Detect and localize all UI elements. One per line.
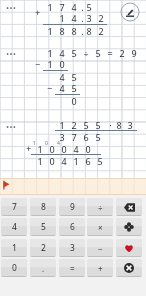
- staticText: 4: [59, 82, 65, 94]
- staticText: ×: [98, 222, 103, 233]
- staticText: ÷: [83, 47, 89, 59]
- staticText: 1: [59, 119, 65, 131]
- staticText: 6: [70, 221, 75, 233]
- staticText: 5: [71, 82, 77, 94]
- staticText: −: [98, 243, 103, 254]
- staticText: 6: [85, 155, 91, 167]
- staticText: 4: [12, 221, 17, 233]
- button[interactable]: Favorite: [116, 239, 142, 257]
- button[interactable]: Problem options: [4, 49, 18, 59]
- button[interactable]: 2: [30, 239, 56, 257]
- button[interactable]: ÷: [87, 198, 113, 216]
- button[interactable]: 9: [59, 198, 85, 216]
- staticText: 0: [61, 143, 67, 155]
- staticText: .: [42, 263, 45, 274]
- staticText: 2: [98, 12, 104, 24]
- button[interactable]: =: [59, 259, 85, 277]
- staticText: +: [98, 263, 103, 274]
- button[interactable]: 4: [1, 218, 27, 236]
- staticText: 4: [59, 71, 65, 83]
- staticText: 3: [86, 12, 92, 24]
- button[interactable]: ×: [87, 218, 113, 236]
- staticText: 1: [37, 143, 43, 155]
- staticText: 1: [33, 140, 36, 147]
- staticText: 3: [70, 242, 75, 254]
- button[interactable]: 1: [1, 239, 27, 257]
- staticText: 9: [131, 47, 137, 59]
- staticText: 0: [71, 95, 77, 107]
- staticText: 0: [12, 262, 17, 274]
- staticText: 5: [97, 155, 103, 167]
- staticText: 7: [71, 131, 77, 143]
- staticText: ·: [109, 119, 112, 131]
- staticText: 0: [49, 143, 55, 155]
- staticText: 8: [41, 201, 46, 213]
- staticText: 2: [119, 47, 125, 59]
- staticText: 5: [95, 119, 101, 131]
- staticText: 8: [116, 119, 122, 131]
- button[interactable]: +: [87, 259, 113, 277]
- staticText: +: [26, 142, 32, 154]
- button[interactable]: 5: [30, 218, 56, 236]
- staticText: 1: [12, 242, 17, 254]
- staticText: 5: [71, 71, 77, 83]
- button[interactable]: Backspace: [116, 198, 142, 216]
- staticText: 2: [98, 25, 104, 37]
- button[interactable]: 6: [59, 218, 85, 236]
- staticText: 1: [47, 25, 53, 37]
- staticText: 1: [47, 1, 53, 13]
- staticText: 1: [37, 155, 43, 167]
- staticText: 0: [45, 140, 48, 147]
- staticText: 1: [73, 155, 79, 167]
- staticText: 5: [86, 1, 92, 13]
- staticText: 5: [83, 119, 89, 131]
- button[interactable]: Clear: [116, 259, 142, 277]
- staticText: 5: [95, 131, 101, 143]
- button[interactable]: −: [87, 239, 113, 257]
- staticText: 5: [41, 221, 46, 233]
- button[interactable]: 0: [1, 259, 27, 277]
- staticText: 9: [70, 201, 75, 213]
- staticText: 8: [86, 25, 92, 37]
- staticText: ÷: [98, 202, 103, 213]
- staticText: −: [35, 58, 41, 70]
- staticText: 5: [95, 47, 101, 59]
- button[interactable]: 7: [1, 198, 27, 216]
- staticText: .: [81, 12, 84, 24]
- staticText: +: [35, 6, 41, 18]
- staticText: 3: [127, 119, 133, 131]
- staticText: .: [81, 25, 84, 37]
- staticText: 0: [85, 143, 91, 155]
- staticText: 2: [41, 242, 46, 254]
- button[interactable]: .: [30, 259, 56, 277]
- staticText: 5: [71, 47, 77, 59]
- staticText: 8: [71, 25, 77, 37]
- staticText: 4: [71, 1, 77, 13]
- staticText: 1: [47, 47, 53, 59]
- staticText: 3: [59, 131, 65, 143]
- staticText: −: [47, 82, 53, 94]
- staticText: .: [81, 1, 84, 13]
- button[interactable]: Settings: [116, 218, 142, 236]
- staticText: 0: [59, 58, 65, 70]
- staticText: 4: [59, 47, 65, 59]
- button[interactable]: [0, 178, 146, 195]
- staticText: 4: [71, 12, 77, 24]
- staticText: =: [107, 47, 113, 59]
- staticText: =: [70, 263, 75, 274]
- staticText: 7: [12, 201, 17, 213]
- staticText: 4: [73, 143, 79, 155]
- button[interactable]: Problem options: [4, 122, 18, 132]
- button[interactable]: Problem options: [4, 3, 18, 13]
- staticText: 2: [71, 119, 77, 131]
- button[interactable]: 3: [59, 239, 85, 257]
- staticText: 1: [47, 58, 53, 70]
- staticText: 8: [59, 25, 65, 37]
- button[interactable]: 8: [30, 198, 56, 216]
- button[interactable]: Draw: [120, 2, 140, 22]
- staticText: 4: [57, 140, 60, 147]
- staticText: 7: [59, 1, 65, 13]
- staticText: 1: [59, 12, 65, 24]
- staticText: 0: [49, 155, 55, 167]
- staticText: 6: [83, 131, 89, 143]
